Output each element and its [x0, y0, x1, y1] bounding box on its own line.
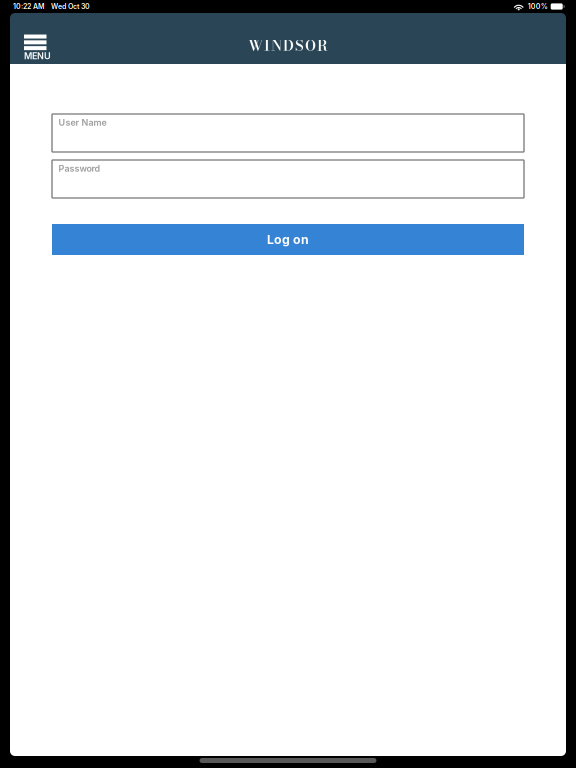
button[interactable]: Menu — [10, 13, 64, 64]
staticText: User Name — [58, 117, 106, 128]
button[interactable]: Log on — [52, 224, 524, 255]
staticText: 100% — [528, 2, 548, 11]
staticText: Password — [58, 163, 100, 174]
staticText: Wed Oct 30 — [51, 2, 90, 11]
staticText: 10:22 AM — [13, 2, 45, 11]
button[interactable]: Password — [52, 160, 524, 198]
staticText: W I N D S O R — [248, 34, 328, 56]
staticText: Log on — [267, 232, 309, 247]
staticText: MENU — [24, 50, 51, 61]
button[interactable]: User Name — [52, 114, 524, 152]
